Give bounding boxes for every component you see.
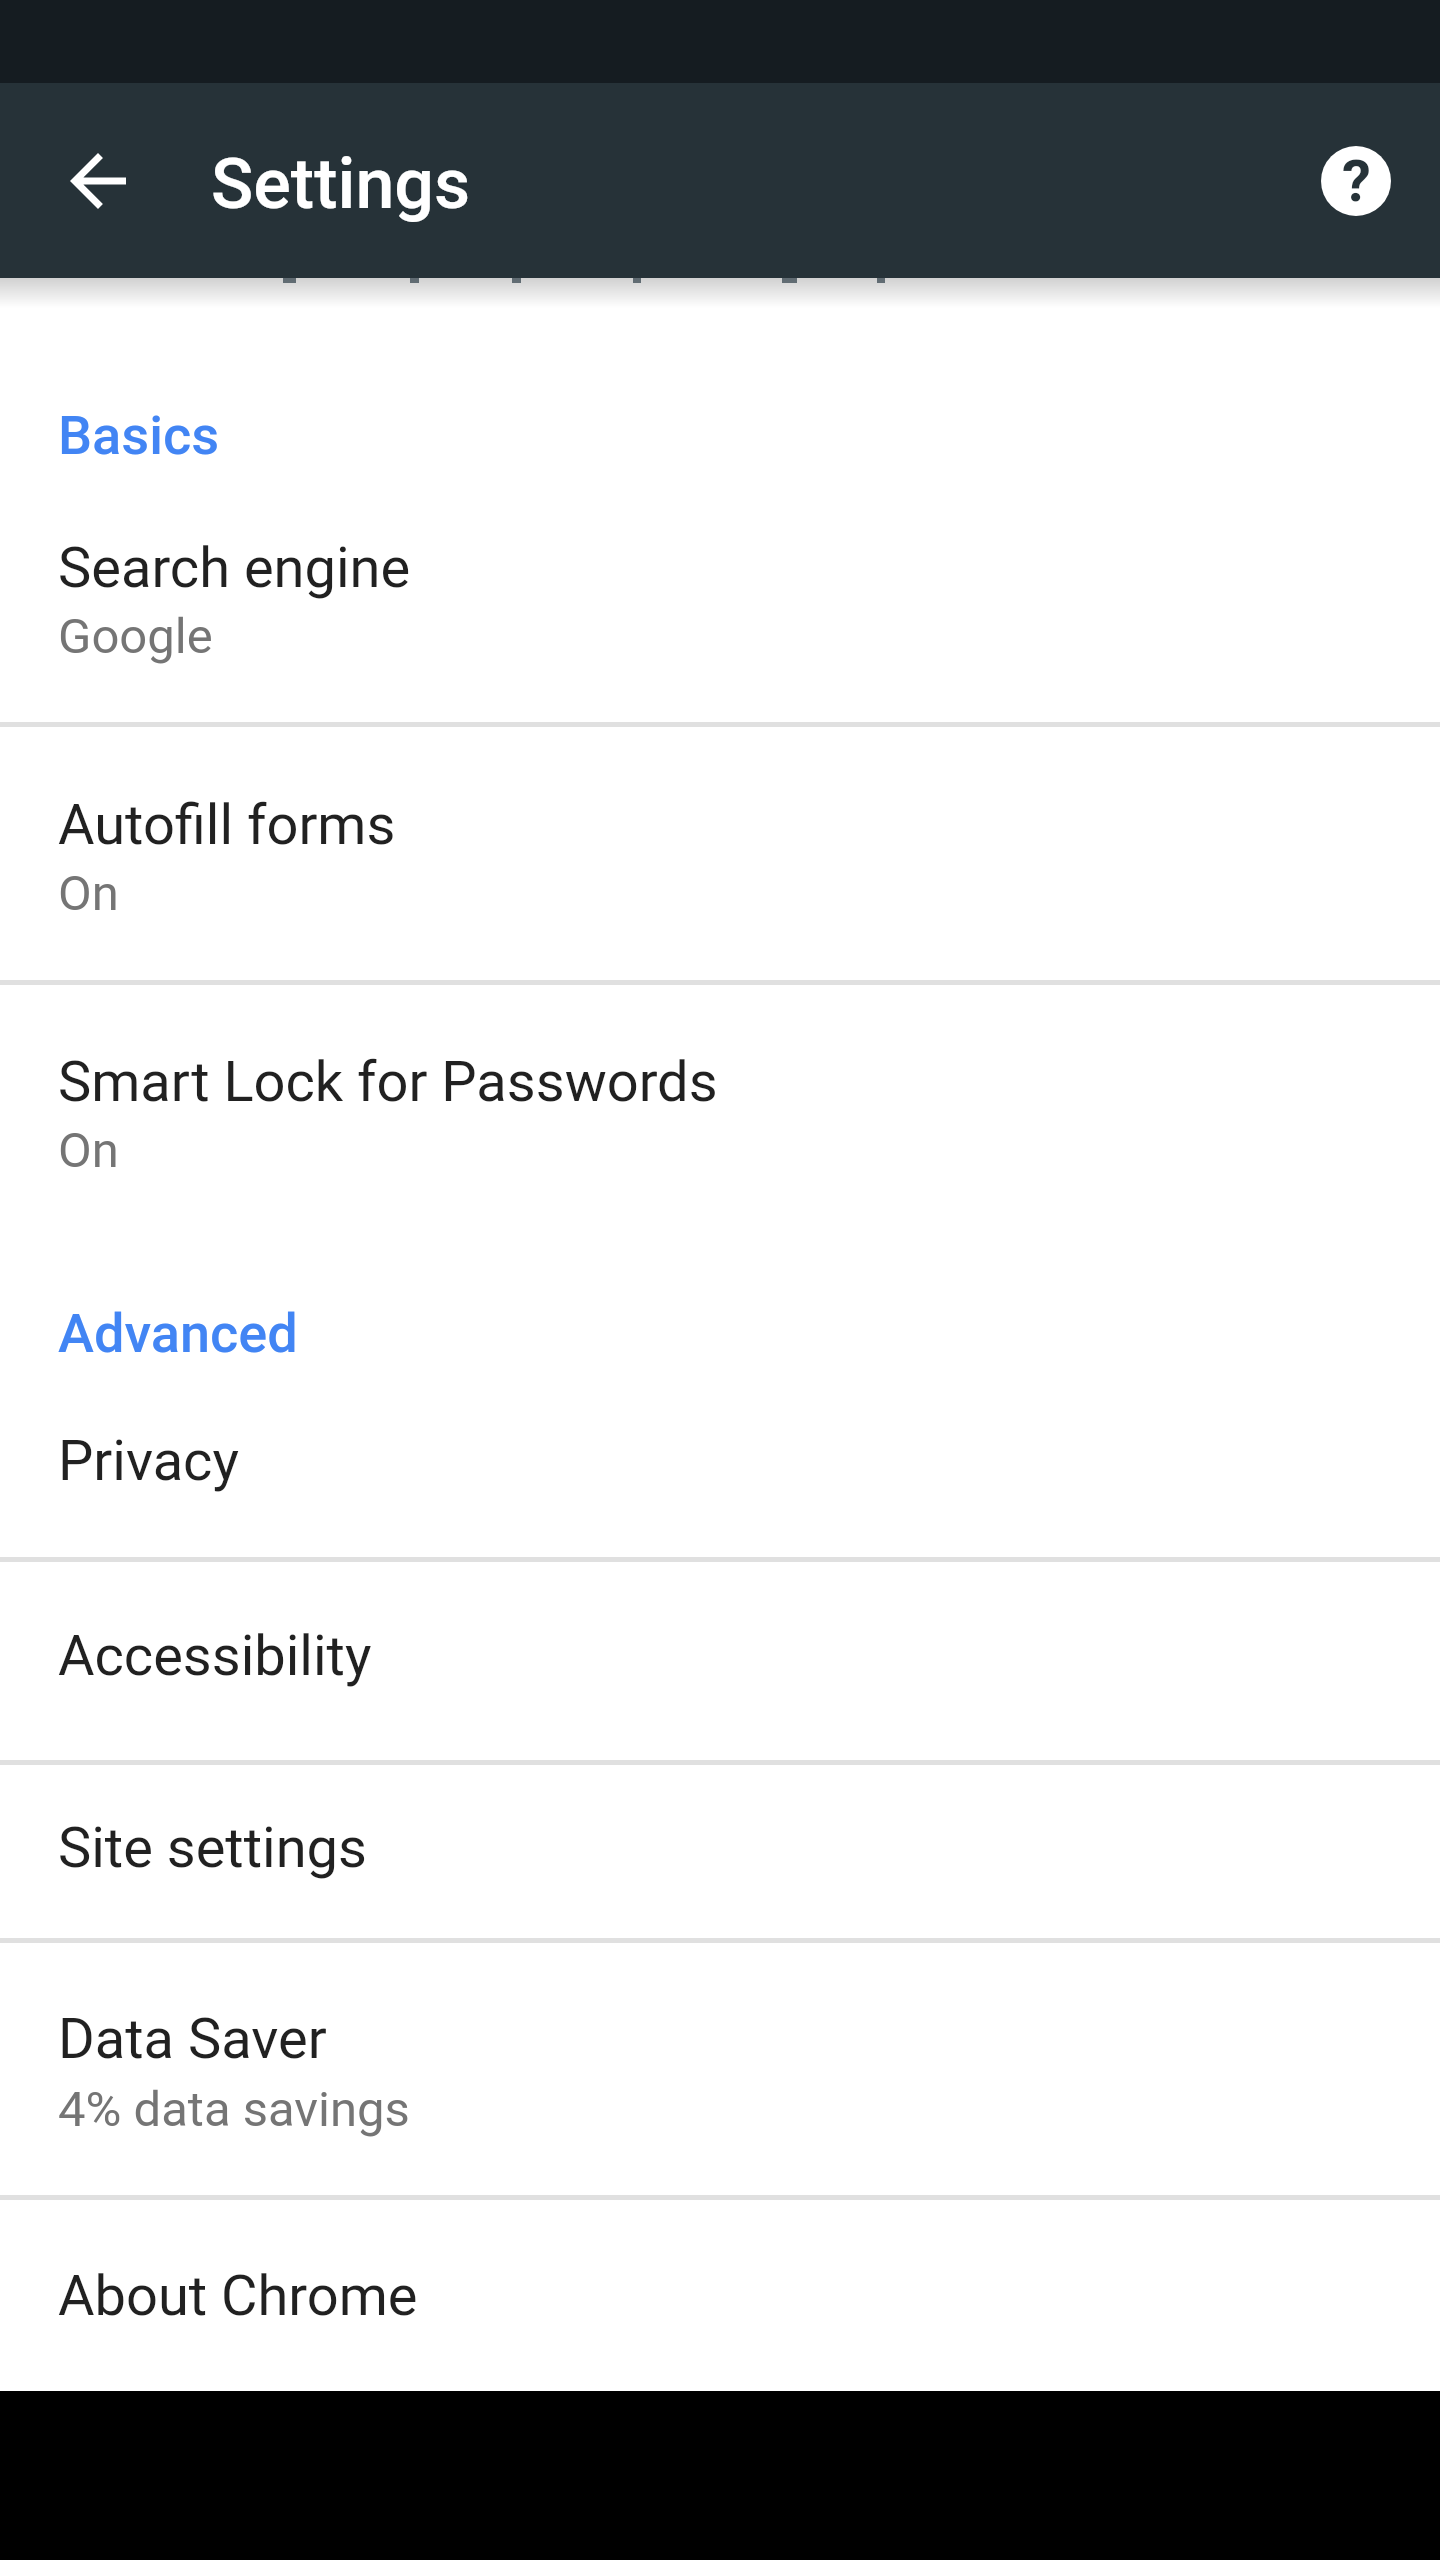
button[interactable]: Accessibility xyxy=(0,1559,1440,1760)
staticText: ? xyxy=(1342,147,1371,215)
staticText: 4% data savings xyxy=(58,2081,410,2138)
staticText: Settings xyxy=(211,143,471,225)
button[interactable] xyxy=(56,139,140,223)
staticText: Google xyxy=(58,608,213,665)
staticText: Autofill forms xyxy=(58,792,396,858)
button[interactable]: Site settings xyxy=(0,1762,1440,1938)
staticText: Smart Lock for Passwords xyxy=(58,1049,718,1115)
staticText: Search engine xyxy=(58,535,411,601)
staticText: On xyxy=(58,865,119,922)
button[interactable]: About Chrome xyxy=(0,2197,1440,2391)
button[interactable]: Autofill forms xyxy=(0,724,1440,982)
button[interactable]: ? xyxy=(1314,139,1398,223)
staticText: Advanced xyxy=(58,1302,298,1365)
staticText: On xyxy=(58,1122,119,1179)
staticText: Site settings xyxy=(58,1815,367,1881)
staticText: About Chrome xyxy=(58,2263,418,2329)
staticText: Basics xyxy=(58,404,220,467)
staticText: Privacy xyxy=(58,1428,239,1494)
staticText: Data Saver xyxy=(58,2006,327,2072)
button[interactable]: Privacy xyxy=(0,1372,1440,1557)
button[interactable]: Data Saver xyxy=(0,1940,1440,2195)
button[interactable]: Smart Lock for Passwords xyxy=(0,982,1440,1272)
button[interactable]: Search engine xyxy=(0,466,1440,724)
staticText: Accessibility xyxy=(58,1623,372,1689)
